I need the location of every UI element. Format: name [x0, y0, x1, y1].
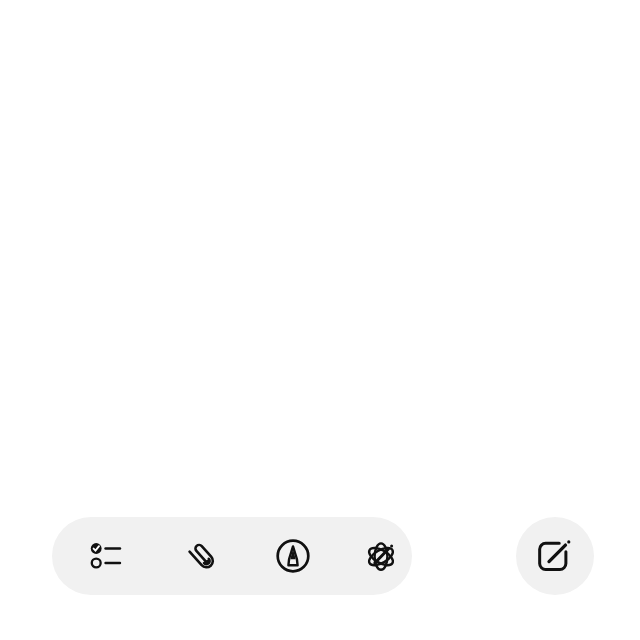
button[interactable]: AI assist	[350, 522, 412, 590]
button[interactable]: Attach file	[168, 522, 236, 590]
button[interactable]: New note	[516, 517, 594, 595]
button[interactable]: Draw	[259, 522, 327, 590]
button[interactable]: Checklist	[73, 522, 141, 590]
